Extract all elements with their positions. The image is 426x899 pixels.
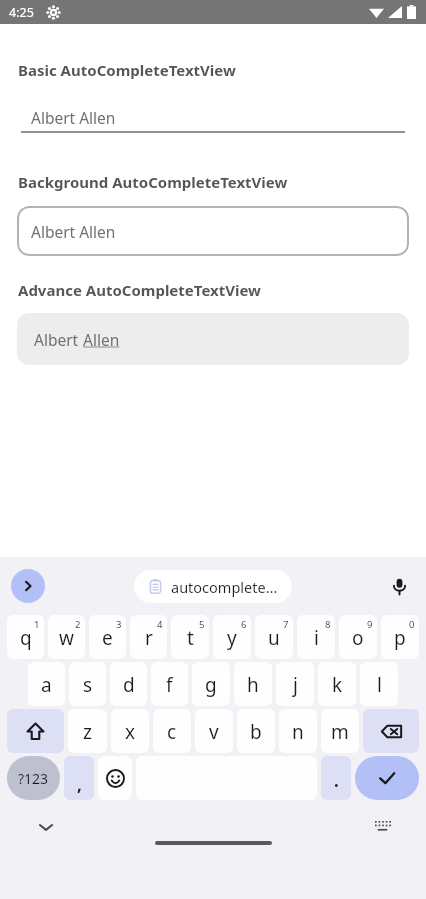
staticText: b bbox=[250, 719, 262, 745]
staticText: v bbox=[209, 719, 219, 745]
staticText: 6 bbox=[241, 618, 247, 631]
button[interactable]: t bbox=[171, 615, 209, 659]
button[interactable]: Switch keyboard bbox=[368, 813, 396, 841]
staticText: Advance AutoCompleteTextView bbox=[18, 280, 261, 300]
staticText: y bbox=[227, 625, 237, 651]
staticText: ?123 bbox=[18, 769, 49, 788]
button[interactable]: c bbox=[153, 709, 191, 753]
button[interactable]: n bbox=[279, 709, 317, 753]
button[interactable]: x bbox=[111, 709, 149, 753]
staticText: d bbox=[123, 672, 135, 698]
staticText: 4:25 bbox=[9, 4, 34, 21]
button[interactable]: g bbox=[192, 662, 230, 706]
button[interactable]: q bbox=[7, 615, 44, 659]
button[interactable]: o bbox=[339, 615, 377, 659]
button[interactable]: m bbox=[321, 709, 359, 753]
button[interactable]: Expand toolbar bbox=[11, 569, 45, 603]
staticText: autocomplete... bbox=[171, 577, 278, 597]
staticText: p bbox=[394, 625, 406, 651]
button[interactable]: autocomplete... bbox=[148, 570, 278, 603]
staticText: Basic AutoCompleteTextView bbox=[18, 60, 236, 80]
staticText: e bbox=[102, 625, 113, 651]
staticText: l bbox=[377, 672, 382, 698]
button[interactable]: e bbox=[89, 615, 126, 659]
staticText: g bbox=[205, 672, 217, 698]
button[interactable]: f bbox=[151, 662, 188, 706]
button[interactable]: h bbox=[234, 662, 272, 706]
staticText: h bbox=[247, 672, 259, 698]
staticText: i bbox=[314, 625, 319, 651]
staticText: 5 bbox=[199, 618, 205, 631]
staticText: Allen bbox=[83, 329, 120, 350]
staticText: w bbox=[59, 625, 74, 651]
staticText: 1 bbox=[34, 618, 40, 631]
button[interactable]: y bbox=[213, 615, 251, 659]
button[interactable]: Albert bbox=[17, 313, 409, 365]
button[interactable]: ?123 bbox=[7, 756, 60, 800]
staticText: 4 bbox=[157, 618, 163, 631]
staticText: x bbox=[125, 719, 136, 745]
button[interactable]: l bbox=[360, 662, 398, 706]
button[interactable]: r bbox=[130, 615, 167, 659]
staticText: q bbox=[20, 625, 32, 651]
button[interactable]: z bbox=[68, 709, 107, 753]
button[interactable]: v bbox=[195, 709, 233, 753]
staticText: r bbox=[145, 625, 153, 651]
button[interactable]: s bbox=[69, 662, 106, 706]
staticText: 0 bbox=[409, 618, 415, 631]
button[interactable]: p bbox=[381, 615, 419, 659]
button[interactable]: Albert Allen bbox=[21, 101, 405, 133]
button[interactable]: d bbox=[110, 662, 147, 706]
staticText: m bbox=[331, 719, 349, 745]
button[interactable]: a bbox=[28, 662, 65, 706]
staticText: s bbox=[83, 672, 93, 698]
staticText: j bbox=[293, 672, 298, 698]
staticText: 7 bbox=[283, 618, 289, 631]
button[interactable]: Albert Allen bbox=[17, 206, 409, 256]
staticText: o bbox=[352, 625, 364, 651]
staticText: Albert Allen bbox=[31, 107, 116, 128]
staticText: z bbox=[83, 719, 92, 745]
button[interactable]: i bbox=[297, 615, 335, 659]
button[interactable]: Shift bbox=[7, 709, 64, 753]
staticText: u bbox=[268, 625, 280, 651]
staticText: a bbox=[41, 672, 52, 698]
button[interactable]: Enter bbox=[355, 756, 419, 800]
staticText: c bbox=[167, 719, 177, 745]
button[interactable]: b bbox=[237, 709, 275, 753]
button[interactable]: Voice input bbox=[384, 571, 414, 601]
staticText: 3 bbox=[116, 618, 122, 631]
staticText: 9 bbox=[367, 618, 373, 631]
button[interactable]: u bbox=[255, 615, 293, 659]
button[interactable]: j bbox=[276, 662, 314, 706]
staticText: . bbox=[334, 769, 339, 792]
staticText: f bbox=[166, 672, 173, 698]
staticText: Albert Allen bbox=[31, 221, 116, 242]
button[interactable]: . bbox=[321, 756, 351, 800]
button[interactable]: w bbox=[48, 615, 85, 659]
staticText: 8 bbox=[325, 618, 331, 631]
button[interactable]: Backspace bbox=[363, 709, 419, 753]
staticText: n bbox=[292, 719, 304, 745]
staticText: 2 bbox=[75, 618, 81, 631]
staticText: Background AutoCompleteTextView bbox=[18, 172, 288, 192]
button[interactable]: , bbox=[64, 756, 94, 800]
button[interactable]: Hide keyboard bbox=[32, 813, 60, 841]
staticText: , bbox=[77, 773, 82, 796]
staticText: Albert bbox=[34, 329, 83, 350]
button[interactable]: Emoji bbox=[98, 756, 132, 800]
staticText: k bbox=[332, 672, 343, 698]
staticText: t bbox=[187, 625, 194, 651]
button[interactable]: k bbox=[318, 662, 356, 706]
